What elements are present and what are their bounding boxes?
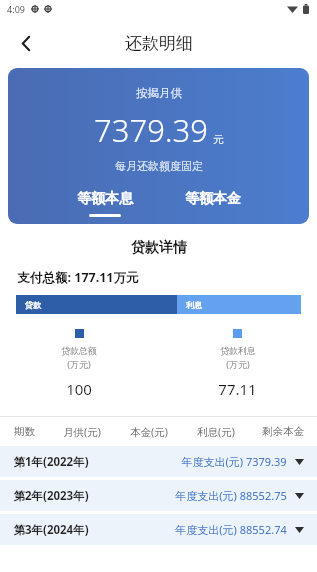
staticText: 利息 xyxy=(186,300,202,310)
staticText: 第2年(2023年) xyxy=(13,488,89,504)
staticText: 贷款总额 xyxy=(61,345,97,356)
staticText: 年度支出(元) 88552.75 xyxy=(175,488,287,503)
staticText: 等额本金 xyxy=(185,190,241,208)
button[interactable]: Back xyxy=(6,23,46,63)
staticText: 第1年(2022年) xyxy=(13,454,89,470)
staticText: 每月还款额度固定 xyxy=(115,159,203,173)
staticText: 贷款 xyxy=(25,300,41,310)
button[interactable]: 第2年(2023年) xyxy=(0,480,317,511)
staticText: 本金(元) xyxy=(130,425,168,439)
staticText: 元 xyxy=(213,133,224,146)
staticText: 贷款利息 xyxy=(220,345,256,356)
button[interactable]: 第1年(2022年) xyxy=(0,446,317,477)
staticText: 100 xyxy=(66,379,92,399)
staticText: 77.11 xyxy=(218,379,257,399)
staticText: 年度支出(元) 7379.39 xyxy=(181,454,287,469)
staticText: 4:09 xyxy=(7,3,25,15)
staticText: 等额本息 xyxy=(77,190,133,208)
button[interactable]: 等额本金 xyxy=(179,188,247,219)
staticText: 第3年(2024年) xyxy=(13,522,89,538)
button[interactable]: 第3年(2024年) xyxy=(0,514,317,545)
staticText: 剩余本金 xyxy=(262,425,304,438)
staticText: 年度支出(元) 88552.74 xyxy=(175,522,287,537)
staticText: 按揭月供 xyxy=(136,86,182,100)
staticText: 7379.39 xyxy=(94,109,208,151)
staticText: 利息(元) xyxy=(197,425,235,439)
staticText: 还款明细 xyxy=(125,33,193,54)
staticText: (万元) xyxy=(226,358,250,370)
staticText: 贷款详情 xyxy=(131,239,187,257)
staticText: (万元) xyxy=(67,358,91,370)
staticText: 月供(元) xyxy=(63,425,101,439)
staticText: 期数 xyxy=(14,425,35,438)
staticText: 支付总额: 177.11万元 xyxy=(17,269,139,286)
button[interactable]: 等额本息 xyxy=(71,188,139,219)
